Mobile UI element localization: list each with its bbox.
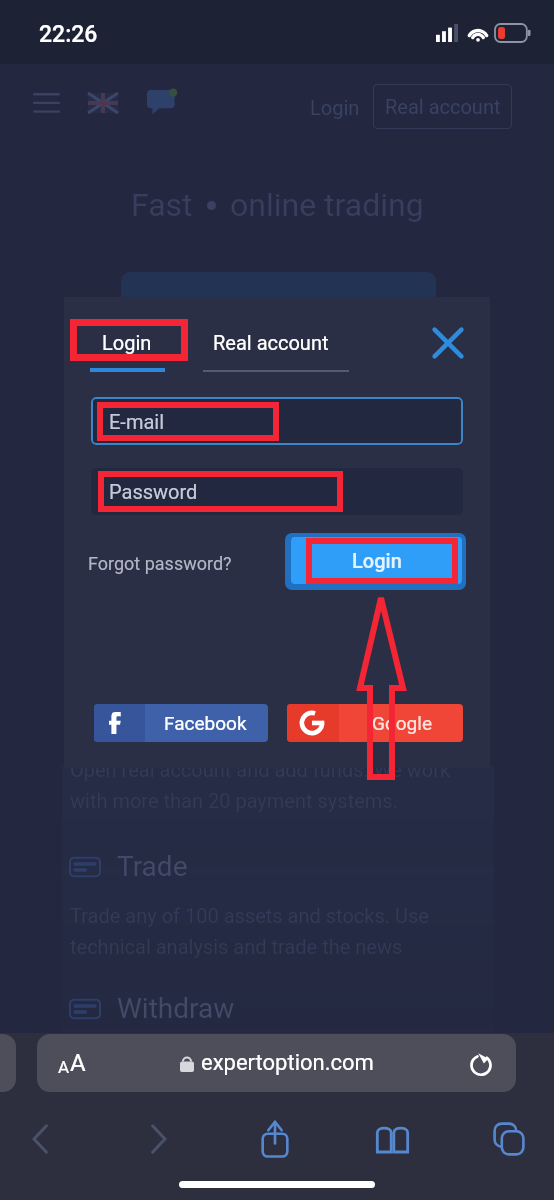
staticText: Trade (117, 850, 188, 883)
staticText: Real account (213, 331, 329, 354)
button[interactable]: Google (287, 704, 463, 742)
staticText: Login (102, 331, 152, 354)
staticText: Forgot password? (88, 553, 232, 574)
button[interactable]: E-mail (91, 397, 463, 445)
button[interactable]: Support chat (146, 88, 178, 116)
button[interactable]: Menu (30, 90, 62, 116)
button[interactable]: Login (90, 322, 164, 363)
staticText: E-mail (109, 410, 165, 433)
button[interactable]: Language (87, 90, 119, 116)
staticText: Real account (385, 95, 501, 118)
staticText: Facebook (164, 712, 247, 734)
button[interactable]: Login (291, 537, 462, 584)
staticText: Password (109, 480, 198, 503)
button[interactable]: Forward (130, 1111, 186, 1167)
button[interactable]: Tabs (481, 1111, 537, 1167)
staticText: A (58, 1057, 70, 1077)
staticText: expertoption.com (201, 1050, 374, 1076)
button[interactable]: Password (91, 468, 463, 515)
staticText: Login (310, 96, 360, 119)
button[interactable]: Login (300, 88, 370, 127)
button[interactable]: Facebook (94, 704, 268, 742)
staticText: 22:26 (39, 21, 98, 48)
staticText: online trading (230, 186, 424, 224)
button[interactable]: Real account (373, 84, 512, 129)
staticText: Withdraw (117, 992, 235, 1025)
staticText: Open real account and add funds. We work (70, 758, 451, 781)
staticText: Fast (131, 186, 193, 224)
staticText: Trade any of 100 assets and stocks. Use (70, 904, 429, 927)
button[interactable]: A (37, 1034, 516, 1092)
button[interactable]: Forgot password? (84, 547, 236, 580)
button[interactable]: Close (422, 317, 474, 369)
staticText: A (70, 1049, 86, 1077)
staticText: with more than 20 payment systems. (70, 789, 398, 812)
button[interactable]: Real account (201, 322, 341, 363)
staticText: Login (352, 549, 402, 572)
staticText: Google (372, 712, 432, 734)
button[interactable]: Bookmarks (364, 1111, 420, 1167)
staticText: technical analysis and trade the news (70, 935, 403, 958)
button[interactable]: Share (247, 1111, 303, 1167)
button[interactable]: Back (12, 1111, 68, 1167)
